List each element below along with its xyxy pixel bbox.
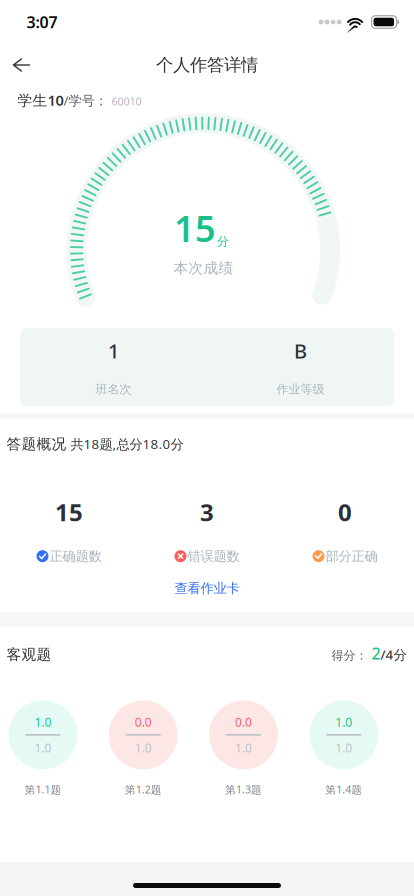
- staticText: 15: [55, 496, 83, 528]
- button[interactable]: Back: [0, 43, 46, 86]
- staticText: B: [294, 337, 307, 364]
- staticText: 1.0: [135, 740, 152, 756]
- staticText: 客观题: [6, 646, 51, 664]
- staticText: 错误题数: [187, 548, 239, 564]
- staticText: 查看作业卡: [174, 580, 239, 597]
- staticText: 第1.3题: [225, 782, 262, 797]
- button[interactable]: 查看作业卡: [0, 564, 414, 612]
- staticText: 分: [217, 234, 229, 249]
- staticText: /4分: [381, 646, 407, 663]
- staticText: 0: [338, 496, 352, 528]
- staticText: 学生10: [17, 90, 63, 110]
- staticText: 60010: [111, 94, 141, 108]
- staticText: 共18题,总分18.0分: [66, 435, 183, 453]
- staticText: /学号：: [63, 91, 111, 109]
- staticText: 2: [372, 643, 381, 664]
- staticText: 15: [174, 204, 216, 252]
- staticText: 1.0: [34, 714, 51, 730]
- staticText: 1.0: [34, 740, 51, 756]
- staticText: 班名次: [95, 382, 131, 397]
- button[interactable]: 1.0: [309, 700, 378, 797]
- staticText: 作业等级: [276, 382, 324, 397]
- staticText: 0.0: [235, 714, 252, 730]
- staticText: 3: [200, 496, 214, 528]
- staticText: 1.0: [335, 740, 352, 756]
- button[interactable]: 1.0: [8, 700, 77, 797]
- button[interactable]: 0.0: [209, 700, 278, 797]
- staticText: 3:07: [26, 11, 57, 33]
- button[interactable]: 0.0: [109, 700, 178, 797]
- staticText: 部分正确: [325, 548, 377, 564]
- staticText: 正确题数: [49, 548, 101, 564]
- staticText: 得分：: [332, 648, 372, 663]
- staticText: 第1.1题: [24, 782, 61, 797]
- staticText: 答题概况: [6, 435, 66, 453]
- staticText: 个人作答详情: [156, 54, 258, 76]
- staticText: 第1.4题: [325, 782, 362, 797]
- staticText: 第1.2题: [125, 782, 162, 797]
- staticText: 1.0: [335, 714, 352, 730]
- staticText: 1: [108, 337, 119, 364]
- staticText: 本次成绩: [173, 259, 233, 277]
- staticText: 1.0: [235, 740, 252, 756]
- staticText: 0.0: [135, 714, 152, 730]
